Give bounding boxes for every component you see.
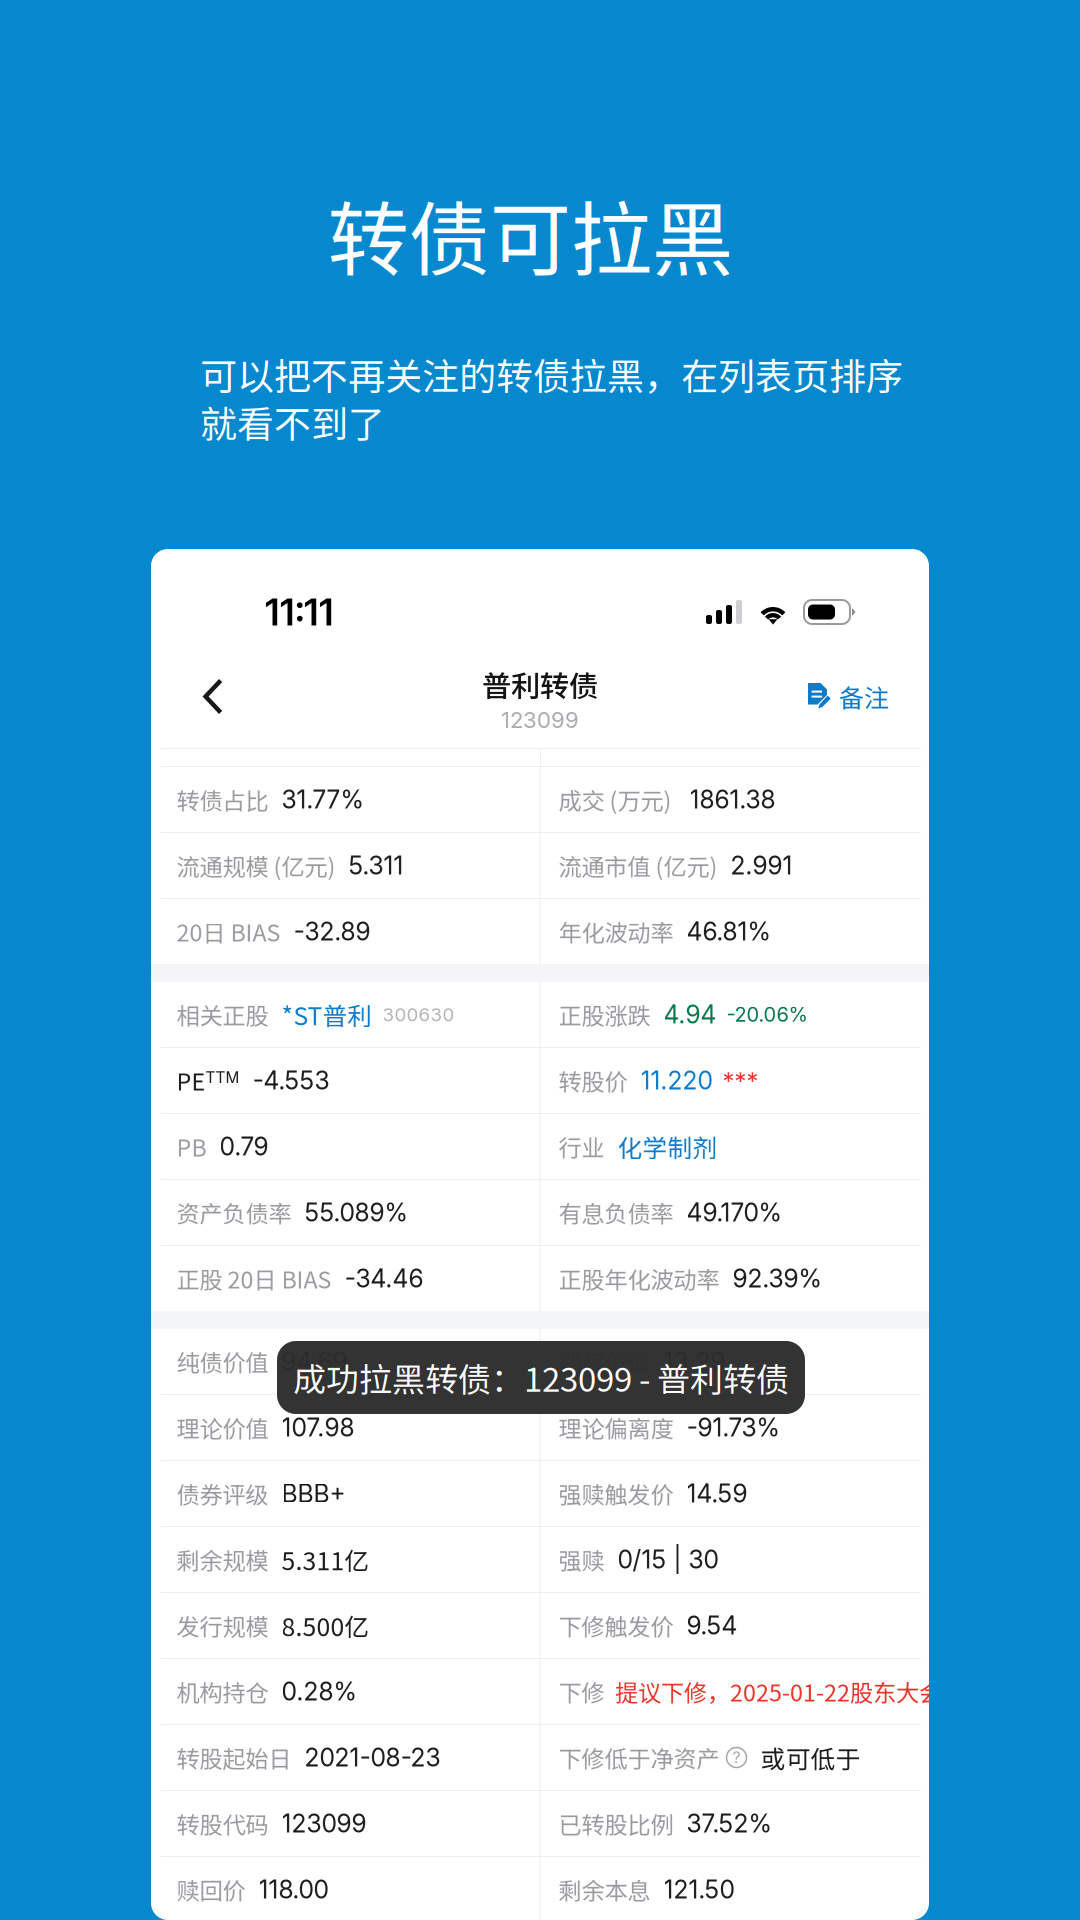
staticText: 转股起始日 <box>176 1741 291 1774</box>
staticText: 备注 <box>839 678 889 715</box>
staticText: 普利转债 <box>482 663 598 705</box>
staticText: 0.79 <box>219 1132 268 1161</box>
staticText: 107.98 <box>281 1413 354 1442</box>
staticText: -32.89 <box>293 917 370 946</box>
button[interactable]: 备注 <box>719 645 929 748</box>
staticText: 92.39% <box>732 1264 821 1293</box>
staticText: 或可低于 <box>760 1740 860 1775</box>
staticText: 流通规模 (亿元) <box>176 849 335 882</box>
staticText: 下修 <box>558 1675 604 1708</box>
staticText: 就看不到了 <box>200 395 385 448</box>
staticText: 5.311 <box>348 851 403 880</box>
staticText: 49.170% <box>686 1198 781 1227</box>
staticText: 121.50 <box>663 1875 734 1904</box>
staticText: 转债占比 <box>176 783 268 816</box>
staticText: 123099 <box>501 706 579 733</box>
staticText: 年化波动率 <box>558 915 673 948</box>
staticText: 剩余本息 <box>558 1873 650 1906</box>
staticText: 300630 <box>382 1003 454 1026</box>
staticText: 成交 (万元) <box>558 783 671 816</box>
staticText: 下修低于净资产 <box>558 1741 719 1774</box>
staticText: 31.77% <box>281 785 363 814</box>
staticText: 正股 20日 BIAS <box>176 1262 331 1295</box>
staticText: 发行规模 <box>176 1609 268 1642</box>
staticText: 已转股比例 <box>558 1807 673 1840</box>
staticText: 转股代码 <box>176 1807 268 1840</box>
staticText: 转债可拉黑 <box>327 175 732 293</box>
staticText: ? <box>732 1748 740 1767</box>
staticText: 理论偏离度 <box>558 1411 673 1444</box>
staticText: BBB+ <box>281 1479 345 1508</box>
staticText: 14.59 <box>686 1479 747 1508</box>
staticText: *** <box>722 1066 758 1095</box>
staticText: 可以把不再关注的转债拉黑，在列表页排序 <box>200 347 903 401</box>
staticText: 强赎 <box>558 1543 604 1576</box>
staticText: PB <box>176 1130 206 1163</box>
staticText: 化学制剂 <box>617 1129 717 1164</box>
staticText: -20.06% <box>726 1002 807 1027</box>
staticText: 流通市值 (亿元) <box>558 849 717 882</box>
staticText: 有息负债率 <box>558 1196 673 1229</box>
staticText: 正股涨跌 <box>558 998 650 1031</box>
staticText: PETTM <box>176 1064 239 1097</box>
staticText: 机构持仓 <box>176 1675 268 1708</box>
staticText: 0.28% <box>281 1677 356 1706</box>
staticText: 纯债价值 <box>176 1345 268 1378</box>
staticText: 转股价 <box>558 1064 627 1097</box>
staticText: 成功拉黑转债：123099 - 普利转债 <box>293 1354 789 1401</box>
button[interactable]: Back <box>151 645 301 748</box>
staticText: 55.089% <box>304 1198 407 1227</box>
staticText: 相关正股 <box>176 998 268 1031</box>
staticText: 13.29 <box>663 1347 725 1376</box>
staticText: 理论价值 <box>176 1411 268 1444</box>
staticText: 下修触发价 <box>558 1609 673 1642</box>
staticText: 正股年化波动率 <box>558 1262 719 1295</box>
staticText: *ST普利 <box>281 997 372 1032</box>
staticText: 提议下修，2025-01-22股东大会 <box>615 1675 942 1708</box>
staticText: 行业 <box>558 1130 604 1163</box>
staticText: 123099 <box>281 1809 366 1838</box>
staticText: 118.00 <box>258 1875 328 1904</box>
staticText: 2.991 <box>730 851 792 880</box>
staticText: 5.311亿 <box>281 1542 369 1577</box>
staticText: 资产负债率 <box>176 1196 291 1229</box>
staticText: 2021-08-23 <box>304 1743 440 1772</box>
staticText: 强赎触发价 <box>558 1477 673 1510</box>
staticText: 11:11 <box>265 589 334 635</box>
staticText: 37.52% <box>686 1809 771 1838</box>
staticText: 20日 BIAS <box>176 915 280 948</box>
staticText: -91.73% <box>686 1413 779 1442</box>
staticText: 剩余规模 <box>176 1543 268 1576</box>
staticText: 11.220 <box>640 1066 712 1095</box>
staticText: 4.94 <box>663 1000 716 1029</box>
staticText: 0/15 | 30 <box>617 1545 718 1574</box>
staticText: 8.500亿 <box>281 1608 369 1643</box>
staticText: -4.553 <box>252 1066 329 1095</box>
staticText: 46.81% <box>686 917 770 946</box>
staticText: 9.54 <box>686 1611 737 1640</box>
staticText: 期权价值 <box>558 1345 650 1378</box>
staticText: 1861.38 <box>689 785 775 814</box>
staticText: 94.69 <box>281 1347 347 1376</box>
staticText: 债券评级 <box>176 1477 268 1510</box>
staticText: 赎回价 <box>176 1873 245 1906</box>
staticText: -34.46 <box>344 1264 423 1293</box>
